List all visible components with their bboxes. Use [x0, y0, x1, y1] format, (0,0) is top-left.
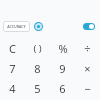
staticText: 7 [9, 61, 16, 76]
staticText: 5 [34, 81, 41, 96]
staticText: 4 [9, 81, 16, 96]
button[interactable]: − [75, 78, 100, 98]
staticText: ACCURACY [7, 24, 26, 29]
button[interactable]: 9 [50, 58, 75, 78]
button[interactable]: % [50, 38, 75, 58]
button[interactable]: C [0, 38, 25, 58]
staticText: 9 [59, 61, 66, 76]
button[interactable]: × [75, 58, 100, 78]
staticText: × [84, 61, 91, 76]
staticText: % [58, 41, 68, 56]
button[interactable]: 8 [25, 58, 50, 78]
button[interactable]: 4 [0, 78, 25, 98]
button[interactable]: Info [34, 22, 43, 31]
button[interactable]: Toggle [83, 23, 95, 30]
button[interactable]: ACCURACY [3, 21, 30, 32]
staticText: C [9, 41, 16, 56]
staticText: ( ) [33, 42, 42, 55]
button[interactable]: ( ) [25, 38, 50, 58]
button[interactable]: 5 [25, 78, 50, 98]
button[interactable]: 7 [0, 58, 25, 78]
button[interactable]: 6 [50, 78, 75, 98]
staticText: 6 [59, 81, 66, 96]
staticText: ÷ [84, 41, 91, 56]
button[interactable]: ÷ [75, 38, 100, 58]
staticText: − [84, 81, 91, 96]
staticText: 8 [34, 61, 41, 76]
